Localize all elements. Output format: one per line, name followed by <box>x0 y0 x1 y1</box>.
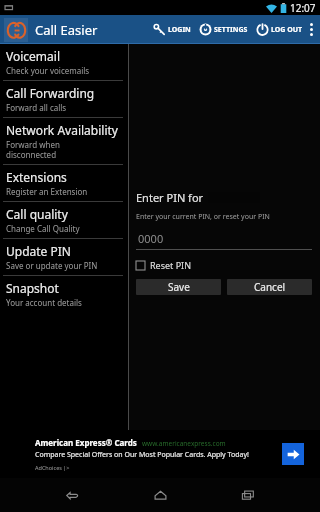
staticText: 0000 <box>138 231 164 246</box>
staticText: Change Call Quality <box>6 223 80 234</box>
staticText: Call quality <box>6 206 68 222</box>
button[interactable]: Recent apps <box>228 478 268 512</box>
button[interactable]: Snapshot <box>0 276 128 312</box>
staticText: Snapshot <box>6 280 59 296</box>
button[interactable]: Network Availability <box>0 118 128 164</box>
staticText: Extensions <box>6 169 67 185</box>
staticText: American Express® Cards <box>35 437 137 448</box>
button[interactable]: SETTINGS <box>198 15 249 44</box>
button[interactable]: Back <box>52 478 92 512</box>
button[interactable]: Voicemail <box>0 44 128 80</box>
staticText: Check your voicemails <box>6 65 90 76</box>
button[interactable]: LOGIN <box>152 15 192 44</box>
button[interactable]: Cancel <box>227 279 312 295</box>
button[interactable]: Update PIN <box>0 239 128 275</box>
button[interactable]: Extensions <box>0 165 128 201</box>
staticText: SETTINGS <box>214 25 248 35</box>
staticText: Reset PIN <box>150 259 191 271</box>
button[interactable]: Open advertisement <box>282 443 304 465</box>
button[interactable]: 0000 <box>136 231 312 250</box>
staticText: Call Forwarding <box>6 85 95 101</box>
staticText: Cancel <box>254 280 286 294</box>
button[interactable]: LOG OUT <box>255 15 304 44</box>
button[interactable]: American Express® Cards <box>0 430 320 478</box>
staticText: LOGIN <box>168 25 191 35</box>
staticText: Compare Special Offers on Our Most Popul… <box>35 450 249 460</box>
button[interactable]: Call Easier logo <box>4 18 28 42</box>
button[interactable]: Reset PIN <box>136 259 191 271</box>
staticText: Call Easier <box>35 21 98 39</box>
staticText: AdChoices |> <box>35 464 70 471</box>
button[interactable]: Home <box>140 478 180 512</box>
staticText: Register an Extension <box>6 186 88 197</box>
staticText: Update PIN <box>6 243 71 259</box>
staticText: Save <box>168 280 190 294</box>
button[interactable]: Call Forwarding <box>0 81 128 117</box>
staticText: 12:07 <box>290 1 316 15</box>
button[interactable]: More options <box>304 15 318 44</box>
staticText: Enter PIN for <box>136 190 204 205</box>
staticText: Network Availability <box>6 122 118 138</box>
staticText: LOG OUT <box>271 25 303 35</box>
staticText: Voicemail <box>6 48 60 64</box>
button[interactable]: Save <box>136 279 221 295</box>
staticText: www.americanexpress.com <box>142 439 226 448</box>
staticText: Forward when disconnected <box>6 139 60 160</box>
button[interactable]: Call quality <box>0 202 128 238</box>
staticText: Save or update your PIN <box>6 260 98 271</box>
staticText: Enter your current PIN, or reset your PI… <box>136 212 270 222</box>
staticText: Your account details <box>6 297 82 308</box>
staticText: Forward all calls <box>6 102 67 113</box>
